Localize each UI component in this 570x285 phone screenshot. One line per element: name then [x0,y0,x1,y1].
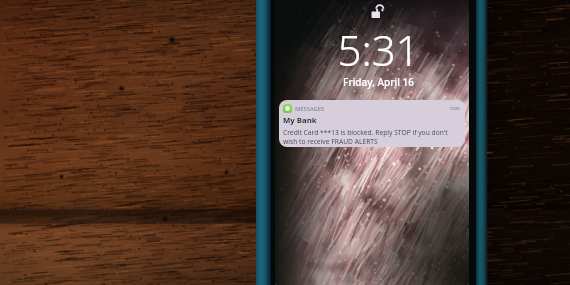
staticText: 5:31 [337,21,420,78]
staticText: MESSAGES [295,105,325,113]
staticText: Credit Card ***13 is blocked. Reply STOP… [283,128,448,146]
button[interactable]: Unlocked [369,3,387,21]
staticText: now [450,105,460,112]
button[interactable]: MESSAGES [279,100,465,147]
staticText: My Bank [283,115,317,126]
staticText: Friday, April 16 [343,75,414,89]
